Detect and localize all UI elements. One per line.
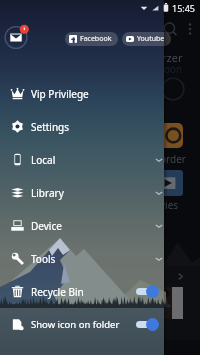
button[interactable]: Tools — [0, 242, 164, 275]
button[interactable]: Show icon on folder — [0, 308, 164, 341]
staticText: Tools — [31, 252, 56, 266]
button[interactable] — [164, 266, 200, 340]
staticText: Youtube — [137, 34, 165, 44]
staticText: Settings — [31, 120, 70, 134]
staticText: Local — [31, 153, 56, 167]
button[interactable]: Library — [0, 176, 164, 209]
staticText: order — [160, 152, 186, 166]
button[interactable]: Youtube — [122, 32, 171, 46]
button[interactable]: Vip Privilege — [0, 77, 164, 110]
staticText: vies — [160, 198, 179, 212]
button[interactable]: More options — [182, 21, 198, 37]
button[interactable]: Search — [162, 21, 179, 38]
button[interactable] — [160, 123, 183, 148]
button[interactable]: Local — [0, 143, 164, 176]
button[interactable]: Settings — [0, 110, 164, 143]
staticText: Facebook — [80, 34, 112, 44]
staticText: oon — [164, 62, 183, 76]
staticText: Show icon on folder — [31, 318, 120, 331]
button[interactable]: Facebook — [65, 32, 118, 46]
button[interactable] — [160, 170, 183, 196]
staticText: Library — [31, 186, 64, 200]
staticText: Recycle Bin — [31, 285, 84, 299]
staticText: rzer — [162, 50, 183, 65]
staticText: 15:45 — [172, 2, 196, 14]
button[interactable]: Device — [0, 209, 164, 242]
button[interactable]: Recycle Bin — [0, 275, 164, 308]
staticText: Vip Privilege — [31, 87, 89, 101]
staticText: Device — [31, 219, 62, 233]
button[interactable]: Messages — [3, 24, 29, 50]
